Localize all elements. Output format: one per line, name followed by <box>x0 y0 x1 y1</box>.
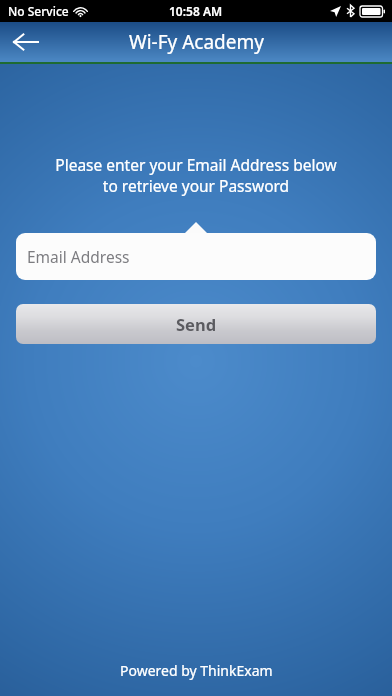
staticText: 10:58 AM <box>169 3 223 19</box>
button[interactable]: Send <box>16 304 376 344</box>
staticText: No Service <box>8 3 69 19</box>
button[interactable]: Email Address <box>16 233 376 280</box>
staticText: Send <box>176 313 217 335</box>
button[interactable]: Back <box>0 22 52 62</box>
staticText: Email Address <box>27 246 130 267</box>
staticText: Powered by ThinkExam <box>120 661 273 680</box>
staticText: Please enter your Email Address below to… <box>0 154 392 197</box>
staticText: Wi-Fy Academy <box>129 29 264 55</box>
